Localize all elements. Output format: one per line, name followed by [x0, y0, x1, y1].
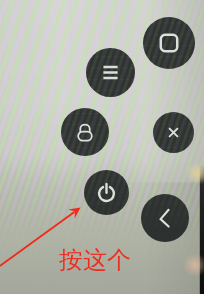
button[interactable]: Power — [84, 170, 129, 215]
button[interactable]: Back — [141, 194, 189, 242]
staticText: 按这个 — [59, 245, 131, 275]
button[interactable]: Home — [143, 17, 195, 69]
button[interactable]: Lock — [61, 108, 109, 156]
button[interactable]: Close — [153, 112, 194, 153]
button[interactable]: Menu — [86, 48, 135, 97]
